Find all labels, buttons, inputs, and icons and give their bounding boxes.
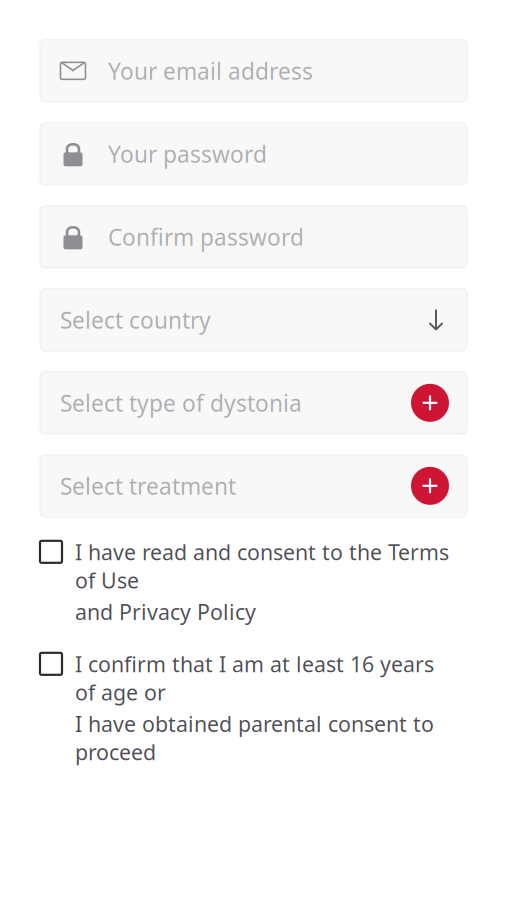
button[interactable]: Select treatment xyxy=(40,455,467,517)
staticText: Confirm password xyxy=(108,222,304,252)
button[interactable]: Confirm password xyxy=(40,206,467,268)
staticText: Select type of dystonia xyxy=(60,388,302,418)
button[interactable]: Your email address xyxy=(40,40,467,102)
button[interactable]: Select country xyxy=(40,289,467,351)
button[interactable]: I have read and consent to the Terms of … xyxy=(23,529,467,635)
button[interactable]: I confirm that I am at least 16 years of… xyxy=(23,641,467,775)
button[interactable]: Select type of dystonia xyxy=(40,372,467,434)
staticText: I have read and consent to the Terms of … xyxy=(75,538,449,594)
staticText: I confirm that I am at least 16 years of… xyxy=(75,650,434,706)
staticText: Select treatment xyxy=(60,471,236,501)
button[interactable]: Your password xyxy=(40,123,467,185)
staticText: Select country xyxy=(60,305,211,335)
staticText: and Privacy Policy xyxy=(75,597,256,626)
staticText: I have obtained parental consent to proc… xyxy=(75,709,434,766)
staticText: Your password xyxy=(108,139,267,169)
staticText: Your email address xyxy=(108,56,313,86)
